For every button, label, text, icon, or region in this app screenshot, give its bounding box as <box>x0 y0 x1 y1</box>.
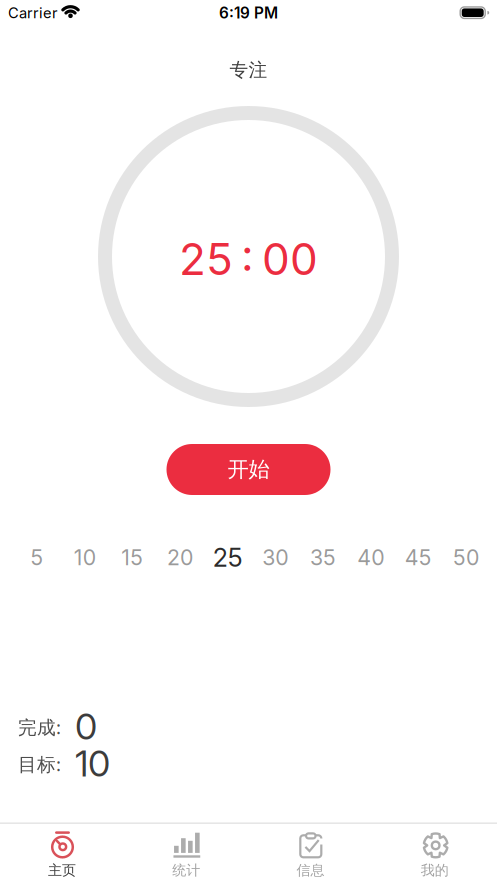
staticText: 开始 <box>227 456 269 483</box>
staticText: Carrier <box>8 4 58 22</box>
button[interactable]: 10 <box>61 535 108 579</box>
staticText: 完成: <box>18 714 61 740</box>
button[interactable]: 我的 <box>373 823 497 883</box>
staticText: 40 <box>357 545 384 570</box>
staticText: 10 <box>75 742 110 785</box>
staticText: 目标: <box>18 751 61 777</box>
button[interactable]: 统计 <box>124 823 248 883</box>
button[interactable]: 15 <box>108 535 156 579</box>
button[interactable]: 45 <box>394 535 442 579</box>
button[interactable]: 5 <box>13 535 61 579</box>
staticText: 主页 <box>48 861 76 879</box>
button[interactable]: 35 <box>299 535 347 579</box>
button[interactable]: 主页 <box>0 823 124 883</box>
staticText: 0 <box>75 705 97 748</box>
staticText: 统计 <box>172 861 200 879</box>
button[interactable]: 信息 <box>248 823 373 883</box>
button[interactable]: 开始 <box>166 444 330 495</box>
staticText: 15 <box>121 545 143 570</box>
staticText: 30 <box>262 545 288 570</box>
staticText: 6:19 PM <box>219 4 278 22</box>
staticText: 我的 <box>421 861 449 879</box>
button[interactable]: 25 <box>204 535 251 579</box>
staticText: 10 <box>74 545 96 570</box>
staticText: 45 <box>405 545 432 570</box>
staticText: 50 <box>453 545 479 570</box>
staticText: 25 <box>213 542 243 573</box>
staticText: 25 : 00 <box>179 232 318 286</box>
staticText: 35 <box>310 545 336 570</box>
button[interactable]: 50 <box>442 535 490 579</box>
button[interactable]: 30 <box>251 535 299 579</box>
staticText: 20 <box>167 545 193 570</box>
staticText: 专注 <box>229 58 267 82</box>
staticText: 信息 <box>297 861 325 879</box>
staticText: 5 <box>30 545 43 570</box>
button[interactable]: 40 <box>347 535 395 579</box>
button[interactable]: 20 <box>156 535 204 579</box>
